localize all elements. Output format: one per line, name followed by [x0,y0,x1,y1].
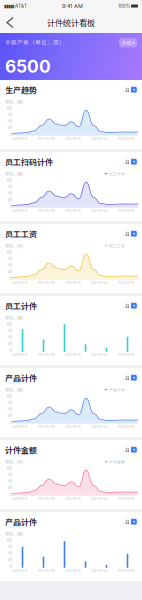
staticText: 100 [6,394,11,398]
staticText: 2021-03-15 [65,209,81,212]
staticText: 0 [9,492,11,497]
staticText: 100 [6,250,11,254]
staticText: 计件金额 [5,444,37,456]
staticText: 2021-03-01 [12,281,28,284]
staticText: 2021-03-01 [12,569,28,572]
staticText: 2021-03-22 [91,425,108,428]
staticText: ▮▮▮▮▮ AT&T [4,3,27,9]
staticText: 单位：(双) [5,387,23,393]
staticText: 50 [7,551,11,555]
staticText: 日 [125,86,130,93]
staticText: 员工工资 [109,243,125,249]
button[interactable]: 今日 [119,38,137,47]
staticText: 2021-03-01 [12,425,28,428]
staticText: 50 [7,335,11,339]
staticText: 日 [125,374,130,381]
staticText: 0 [9,420,11,425]
staticText: 2021-03-29 [117,425,134,428]
staticText: 日 [125,446,130,453]
staticText: 日 [125,230,130,237]
staticText: 0 [9,132,11,137]
button[interactable]: 日 [124,87,137,93]
staticText: 员工扫码计件 [5,156,53,168]
staticText: 50 [7,191,11,195]
staticText: 2021-03-22 [91,209,108,212]
button[interactable]: Back [2,13,18,31]
staticText: ▾ [133,447,135,452]
staticText: 2021-03-15 [65,425,81,428]
button[interactable]: 日 [124,231,137,237]
staticText: 6500 [5,56,51,77]
staticText: 2021-03-08 [38,569,55,572]
staticText: 50 [7,119,11,123]
staticText: 2021-03-15 [65,281,81,284]
staticText: 2021-03-08 [38,137,55,140]
staticText: 2021-03-01 [12,353,28,356]
staticText: 2021-03-22 [91,497,108,500]
staticText: 今日 [121,39,131,46]
button[interactable]: 日 [124,375,137,381]
staticText: 单位：(元) [5,459,23,465]
button[interactable]: 日 [124,159,137,165]
staticText: 2021-03-08 [38,281,55,284]
staticText: 2021-03-29 [117,569,134,572]
staticText: 2021-03-29 [117,353,134,356]
staticText: 50 [7,263,11,267]
staticText: 75 [7,329,11,333]
staticText: ▾ [133,87,135,92]
staticText: 50 [7,479,11,483]
staticText: 100 [6,106,11,110]
staticText: 100 [6,178,11,182]
button[interactable]: 日 [124,519,137,525]
staticText: 日 [125,158,130,165]
staticText: 0 [9,276,11,281]
staticText: ▾ [132,40,134,45]
staticText: 2021-03-08 [38,497,55,500]
staticText: 25 [7,558,11,562]
staticText: 生产趋势 [5,84,37,96]
staticText: 计件金额 [109,459,125,465]
staticText: 产品计件 [5,516,37,528]
staticText: 产品计件 [5,372,37,384]
staticText: 2021-03-29 [117,137,134,140]
staticText: 2021-03-15 [65,569,81,572]
staticText: 100 [6,322,11,326]
staticText: 2021-03-08 [38,425,55,428]
staticText: ▾ [133,303,135,308]
staticText: 2021-03-01 [12,137,28,140]
staticText: 日 [125,518,130,525]
staticText: 2021-03-15 [65,497,81,500]
staticText: 9:41 AM [62,3,83,9]
staticText: 100 [6,538,11,542]
staticText: 员工计件 [109,171,125,177]
staticText: 2021-03-15 [65,137,81,140]
staticText: 单位：(双) [5,315,23,321]
staticText: 25 [7,486,11,490]
staticText: 全部产量（单位：双） [5,38,65,46]
button[interactable]: 日 [124,447,137,453]
staticText: 单位：(元) [5,243,23,249]
staticText: 产品计件 [109,387,125,393]
staticText: 100 [6,466,11,470]
staticText: 0 [9,204,11,209]
staticText: 员工工资 [5,228,37,240]
staticText: 2021-03-29 [117,209,134,212]
staticText: ▾ [133,159,135,164]
staticText: 100% [118,3,130,9]
button[interactable]: 日 [124,303,137,309]
staticText: 2021-03-08 [38,209,55,212]
staticText: ▾ [133,519,135,524]
staticText: 2021-03-01 [12,497,28,500]
staticText: 75 [7,401,11,405]
staticText: ▾ [133,375,135,380]
staticText: ▾ [133,231,135,236]
staticText: 50 [7,407,11,411]
staticText: 2021-03-15 [65,353,81,356]
staticText: 75 [7,185,11,189]
staticText: 2021-03-22 [91,569,108,572]
staticText: 25 [7,414,11,418]
staticText: 75 [7,473,11,477]
staticText: 0 [9,348,11,353]
staticText: 75 [7,257,11,261]
staticText: 员工计件 [5,300,37,312]
